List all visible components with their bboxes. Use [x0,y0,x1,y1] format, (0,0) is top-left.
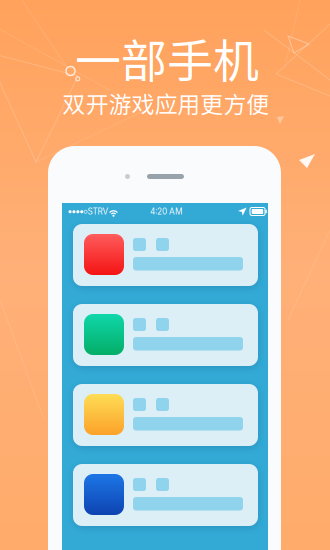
staticText: 一部手机 [75,25,259,91]
staticText: 双开游戏应用更方便 [62,86,269,120]
button[interactable]: App row [73,224,258,286]
button[interactable]: App row [73,304,258,366]
staticText: STRV [87,207,108,217]
button[interactable]: App row [73,384,258,446]
staticText: 4:20 AM [150,207,182,217]
button[interactable]: App row [73,464,258,526]
